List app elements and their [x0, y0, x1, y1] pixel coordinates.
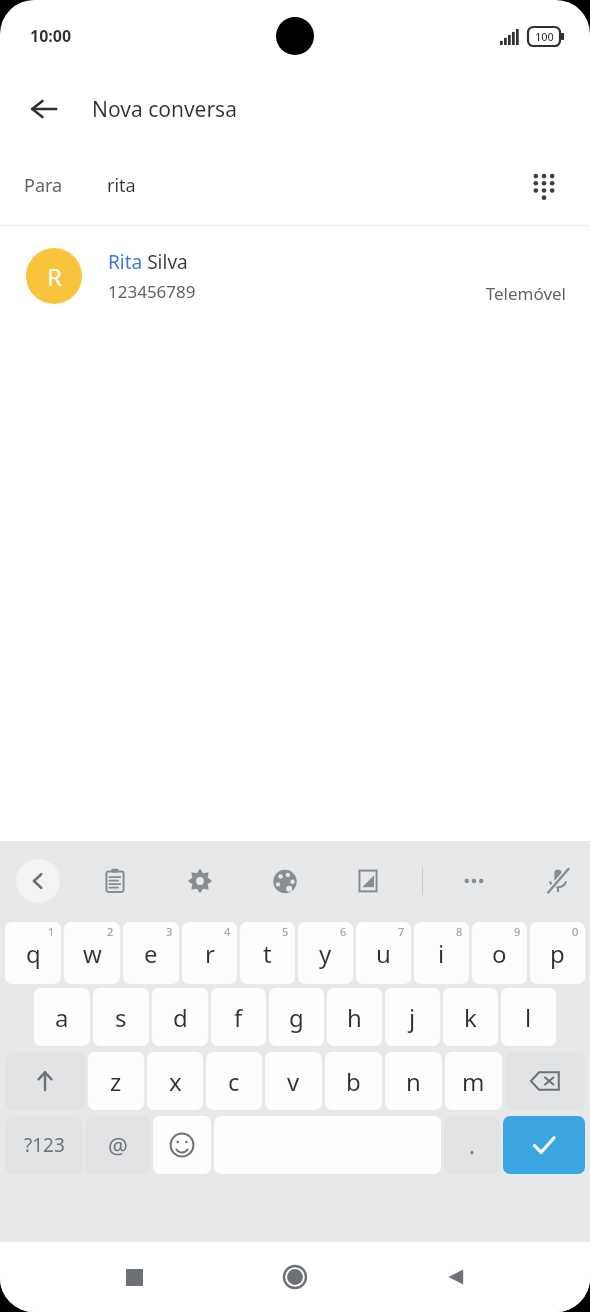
staticText: k — [464, 1001, 477, 1034]
staticText: p — [550, 937, 565, 970]
staticText: g — [289, 1001, 304, 1034]
staticText: z — [110, 1065, 122, 1098]
staticText: m — [462, 1065, 485, 1098]
button[interactable]: j — [385, 988, 440, 1046]
staticText: s — [115, 1001, 127, 1034]
button[interactable]: m — [445, 1052, 502, 1110]
button[interactable]: g — [269, 988, 324, 1046]
button[interactable]: x — [147, 1052, 203, 1110]
staticText: Rita Silva — [108, 249, 188, 275]
button[interactable]: z — [88, 1052, 144, 1110]
button[interactable]: Period — [444, 1116, 500, 1174]
button[interactable]: e — [123, 922, 179, 984]
staticText: o — [492, 937, 507, 970]
button[interactable]: u — [356, 922, 411, 984]
button[interactable]: k — [443, 988, 498, 1046]
staticText: n — [406, 1065, 421, 1098]
staticText: y — [319, 937, 332, 970]
button[interactable]: Collapse toolbar — [16, 859, 60, 903]
button[interactable]: l — [501, 988, 556, 1046]
button[interactable]: b — [325, 1052, 382, 1110]
staticText: 8 — [456, 924, 463, 939]
staticText: Telemóvel — [485, 282, 566, 305]
staticText: 7 — [398, 924, 405, 939]
button[interactable]: Clipboard — [91, 857, 139, 905]
staticText: t — [263, 937, 272, 970]
button[interactable]: Back — [20, 85, 68, 133]
button[interactable]: c — [206, 1052, 262, 1110]
staticText: 2 — [107, 924, 114, 939]
staticText: c — [228, 1065, 240, 1098]
button[interactable]: f — [211, 988, 266, 1046]
button[interactable]: t — [240, 922, 295, 984]
staticText: rita — [107, 173, 136, 198]
button[interactable]: n — [385, 1052, 442, 1110]
button[interactable]: w — [64, 922, 120, 984]
staticText: 4 — [224, 924, 231, 939]
staticText: 123456789 — [108, 280, 196, 303]
button[interactable]: r — [182, 922, 237, 984]
button[interactable]: Dialpad — [518, 160, 570, 212]
staticText: R — [47, 260, 62, 293]
staticText: 10:00 — [30, 25, 72, 47]
staticText: l — [525, 1001, 532, 1034]
button[interactable]: R — [0, 226, 590, 326]
button[interactable]: Done — [503, 1116, 585, 1174]
button[interactable]: Shift — [5, 1052, 85, 1110]
staticText: e — [144, 937, 158, 970]
button[interactable]: h — [327, 988, 382, 1046]
button[interactable]: Resize keyboard — [344, 857, 392, 905]
button[interactable]: Emoji — [153, 1116, 211, 1174]
button[interactable]: Symbols — [5, 1116, 83, 1174]
staticText: x — [169, 1065, 182, 1098]
button[interactable]: Home — [268, 1250, 322, 1304]
staticText: w — [83, 937, 102, 970]
staticText: . — [469, 1130, 475, 1160]
button[interactable]: q — [5, 922, 61, 984]
button[interactable]: d — [152, 988, 208, 1046]
button[interactable]: More options — [450, 857, 498, 905]
staticText: 1 — [48, 924, 55, 939]
staticText: v — [287, 1065, 300, 1098]
staticText: 0 — [572, 924, 579, 939]
staticText: i — [438, 937, 445, 970]
staticText: @ — [108, 1130, 128, 1160]
button[interactable]: y — [298, 922, 353, 984]
button[interactable]: v — [265, 1052, 322, 1110]
button[interactable]: a — [34, 988, 90, 1046]
staticText: 5 — [282, 924, 289, 939]
staticText: Para — [24, 173, 63, 198]
button[interactable]: Backspace — [505, 1052, 585, 1110]
button[interactable]: Themes — [261, 857, 309, 905]
staticText: 3 — [166, 924, 173, 939]
staticText: 100 — [535, 29, 554, 44]
staticText: 6 — [340, 924, 347, 939]
button[interactable]: Recents — [107, 1250, 161, 1304]
staticText: r — [205, 937, 215, 970]
staticText: j — [409, 1001, 416, 1034]
button[interactable]: s — [93, 988, 149, 1046]
staticText: h — [347, 1001, 362, 1034]
staticText: 9 — [514, 924, 521, 939]
button[interactable]: p — [530, 922, 585, 984]
staticText: f — [234, 1001, 243, 1034]
button[interactable]: Voice input off — [534, 857, 582, 905]
button[interactable]: Back — [429, 1250, 483, 1304]
staticText: Nova conversa — [92, 95, 237, 124]
button[interactable]: Settings — [176, 857, 224, 905]
staticText: q — [26, 937, 41, 970]
staticText: ?123 — [24, 1132, 65, 1158]
button[interactable]: At sign — [86, 1116, 150, 1174]
staticText: d — [173, 1001, 188, 1034]
button[interactable]: o — [472, 922, 527, 984]
staticText: u — [376, 937, 391, 970]
staticText: b — [346, 1065, 361, 1098]
button[interactable]: i — [414, 922, 469, 984]
staticText: a — [55, 1001, 69, 1034]
